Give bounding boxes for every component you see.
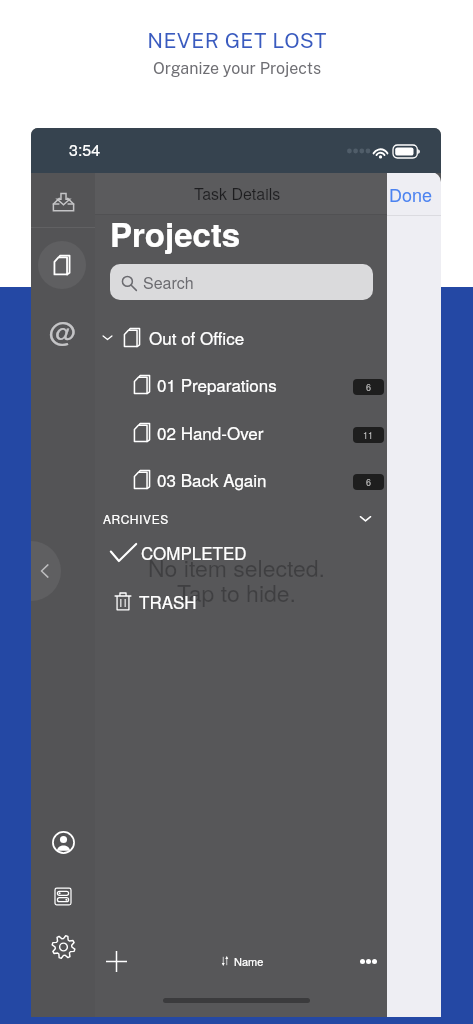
- staticText: Organize your Projects: [153, 59, 321, 78]
- staticText: TRASH: [139, 589, 197, 613]
- staticText: 6: [366, 476, 372, 489]
- staticText: ARCHIVES: [103, 510, 169, 527]
- staticText: 03 Back Again: [157, 467, 267, 491]
- staticText: 3:54: [69, 138, 101, 161]
- button[interactable]: COMPLETED: [95, 539, 387, 565]
- staticText: 01 Preparations: [157, 372, 277, 396]
- button[interactable]: More options: [347, 936, 389, 986]
- button[interactable]: Servers: [41, 874, 85, 918]
- staticText: Done: [389, 181, 433, 207]
- button[interactable]: Account: [41, 820, 85, 864]
- staticText: Name: [234, 953, 264, 969]
- button[interactable]: 02 Hand-Over: [95, 411, 387, 453]
- button[interactable]: Collapse sidebar: [31, 541, 61, 601]
- button[interactable]: 03 Back Again: [95, 458, 387, 500]
- staticText: 11: [363, 429, 374, 442]
- staticText: Projects: [110, 210, 241, 257]
- staticText: No item selected.: [148, 551, 325, 584]
- button[interactable]: Add: [92, 936, 140, 986]
- button[interactable]: Documents: [38, 241, 86, 289]
- button[interactable]: 01 Preparations: [95, 363, 387, 405]
- staticText: COMPLETED: [141, 540, 247, 564]
- button[interactable]: TRASH: [95, 588, 387, 614]
- button[interactable]: Done: [387, 173, 441, 215]
- staticText: Search: [143, 271, 194, 294]
- button[interactable]: Search: [110, 264, 373, 300]
- button[interactable]: Settings: [41, 925, 85, 969]
- button[interactable]: Out of Office: [95, 316, 387, 358]
- staticText: 02 Hand-Over: [157, 420, 264, 444]
- staticText: Task Details: [194, 182, 281, 205]
- button[interactable]: Inbox: [31, 176, 95, 228]
- staticText: Out of Office: [149, 325, 245, 349]
- button[interactable]: Mentions: [41, 308, 85, 352]
- staticText: 6: [366, 381, 372, 394]
- button[interactable]: ARCHIVES: [95, 504, 387, 532]
- staticText: @: [49, 311, 77, 350]
- staticText: Tap to hide.: [177, 576, 296, 609]
- button[interactable]: Name: [215, 936, 270, 986]
- staticText: NEVER GET LOST: [147, 28, 327, 53]
